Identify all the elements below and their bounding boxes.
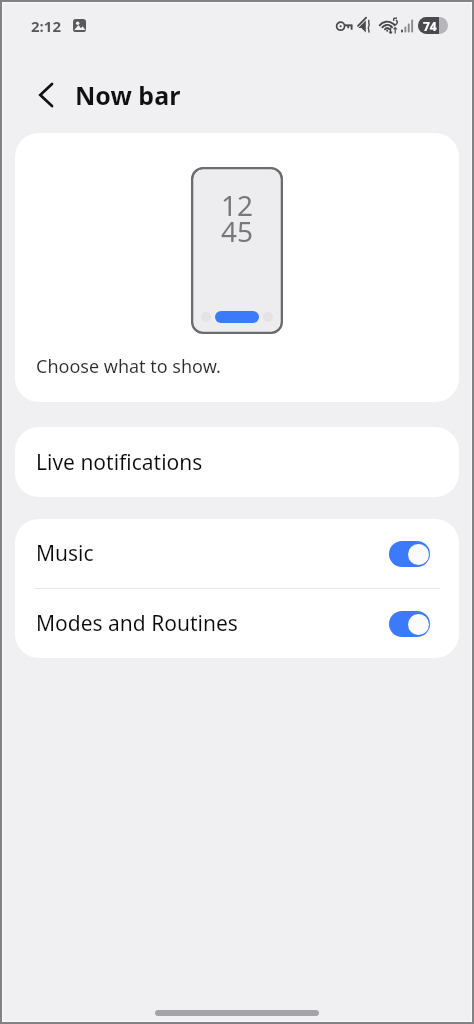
button[interactable]: Turn off Modes and Routines bbox=[389, 611, 430, 637]
button[interactable]: Live notifications bbox=[15, 427, 459, 497]
staticText: Choose what to show. bbox=[36, 354, 221, 379]
staticText: 2:12 bbox=[31, 16, 61, 36]
staticText: 45 bbox=[221, 212, 254, 250]
staticText: Live notifications bbox=[36, 448, 203, 477]
staticText: 74 bbox=[423, 18, 437, 34]
button[interactable]: Modes and Routines bbox=[15, 589, 459, 658]
staticText: Now bar bbox=[75, 78, 181, 112]
staticText: Music bbox=[36, 539, 94, 568]
button[interactable]: Music bbox=[15, 519, 459, 588]
staticText: 12 bbox=[221, 186, 254, 224]
staticText: Modes and Routines bbox=[36, 609, 238, 638]
button[interactable]: Turn off Music bbox=[389, 541, 430, 567]
button[interactable]: Back bbox=[25, 74, 67, 116]
